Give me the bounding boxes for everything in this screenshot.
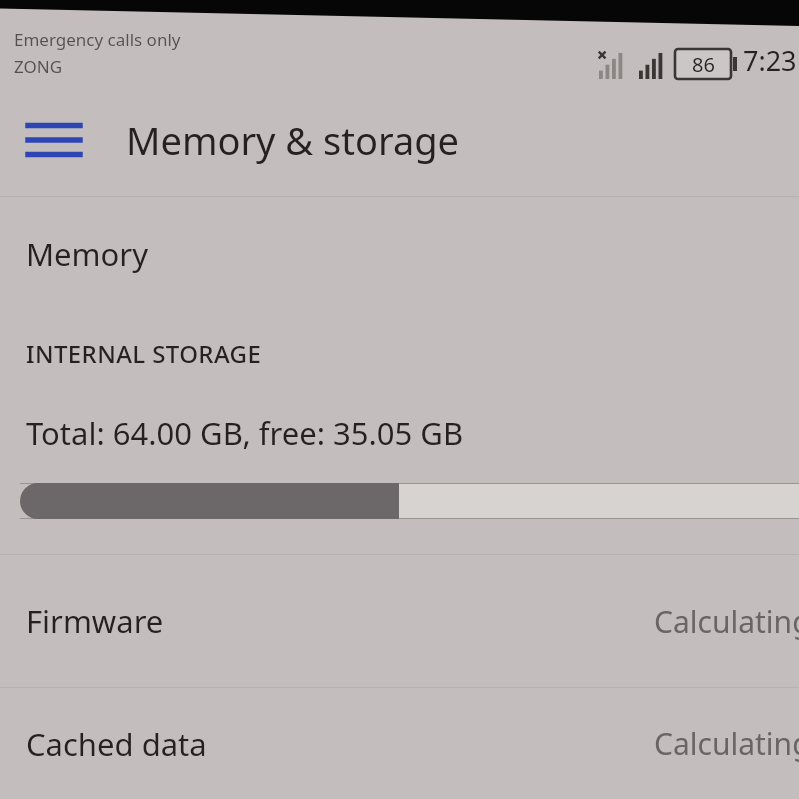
staticText: Firmware [26,600,164,642]
staticText: Memory [26,233,148,275]
staticText: Calculating... [654,601,799,642]
staticText: Emergency calls only [14,28,181,51]
button[interactable]: Firmware [0,555,799,687]
button[interactable]: Open navigation menu [18,104,90,176]
button[interactable]: Cached data [0,688,799,799]
staticText: 7:23 [743,42,797,79]
staticText: ZONG [14,55,63,78]
staticText: Cached data [26,723,207,765]
staticText: Calculating... [654,723,799,764]
staticText: 86 [692,51,715,78]
staticText: INTERNAL STORAGE [26,337,262,370]
staticText: Total: 64.00 GB, free: 35.05 GB [26,412,464,454]
staticText: Memory & storage [126,114,460,166]
